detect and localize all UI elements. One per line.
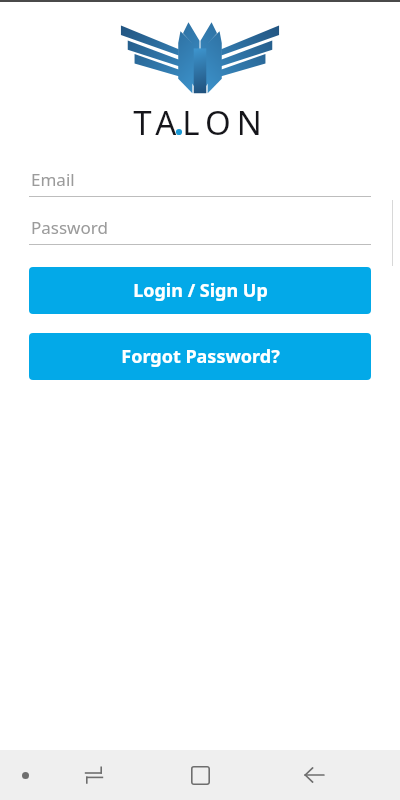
staticText: Forgot Password?	[121, 344, 280, 369]
staticText: Password	[31, 216, 108, 239]
button[interactable]: Home	[178, 753, 222, 797]
button[interactable]: Password	[29, 211, 371, 245]
button[interactable]: Forgot Password?	[29, 333, 371, 380]
staticText: Email	[31, 168, 75, 191]
staticText: Login / Sign Up	[133, 278, 268, 303]
button[interactable]: Email	[29, 163, 371, 197]
button[interactable]: Recent apps	[72, 753, 116, 797]
button[interactable]: Back	[292, 753, 336, 797]
button[interactable]: Menu indicator	[9, 759, 41, 791]
button[interactable]: Login / Sign Up	[29, 267, 371, 314]
staticText: TALON	[133, 100, 268, 145]
